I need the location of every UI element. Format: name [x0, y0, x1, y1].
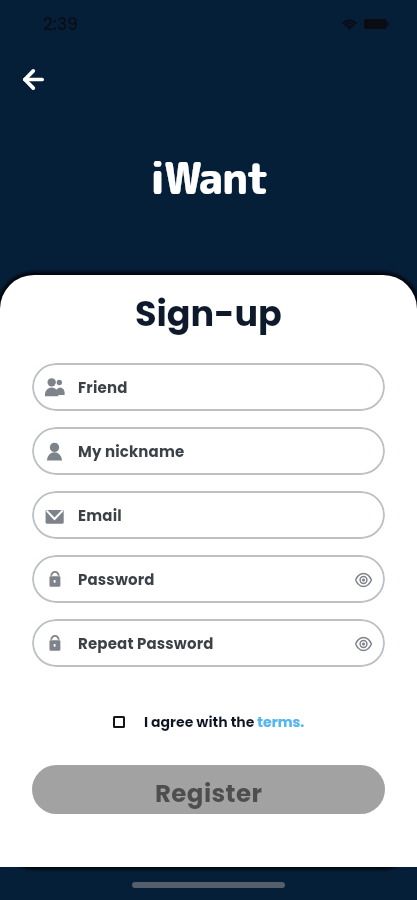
- staticText: Sign-up: [135, 289, 282, 338]
- button[interactable]: Friend: [32, 363, 385, 411]
- staticText: Email: [78, 505, 122, 526]
- button[interactable]: Password: [32, 555, 385, 603]
- button[interactable]: Email: [32, 491, 385, 539]
- button[interactable]: I agree with the terms: [113, 716, 125, 728]
- staticText: I agree with the terms.: [144, 712, 305, 732]
- button[interactable]: Show password: [352, 632, 374, 654]
- button[interactable]: Repeat Password: [32, 619, 385, 667]
- staticText: Password: [78, 569, 155, 590]
- staticText: Register: [155, 776, 263, 810]
- button[interactable]: Show password: [352, 568, 374, 590]
- button[interactable]: Register: [32, 765, 385, 814]
- staticText: 2:39: [43, 12, 78, 36]
- button[interactable]: Back: [11, 57, 55, 101]
- staticText: Repeat Password: [78, 633, 214, 654]
- staticText: My nickname: [78, 441, 185, 462]
- button[interactable]: My nickname: [32, 427, 385, 475]
- staticText: Friend: [78, 377, 128, 398]
- staticText: iWant: [150, 148, 268, 204]
